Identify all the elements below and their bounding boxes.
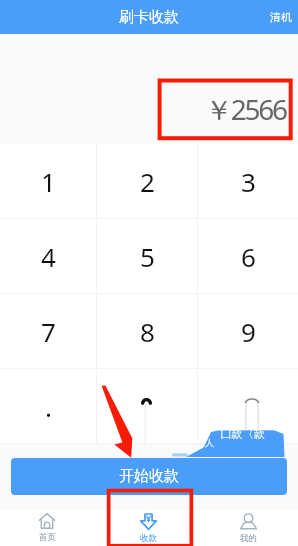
staticText: 7	[41, 314, 56, 349]
staticText: 开始收款	[119, 467, 179, 486]
button[interactable]: 9	[198, 294, 298, 368]
button[interactable]: .	[0, 369, 96, 443]
staticText: 3	[241, 164, 256, 199]
staticText: 我的	[240, 533, 257, 544]
button[interactable]: 我的	[199, 510, 298, 546]
staticText: ￥2566	[205, 90, 286, 128]
button[interactable]: 首页	[0, 510, 100, 546]
staticText: 1	[41, 164, 56, 199]
button[interactable]: 8	[97, 294, 197, 368]
staticText: 9	[241, 314, 256, 349]
staticText: 2	[140, 164, 155, 199]
button[interactable]: 7	[0, 294, 96, 368]
staticText: 人	[205, 437, 214, 448]
button[interactable]: 4	[0, 219, 96, 293]
staticText: 6	[241, 239, 256, 274]
staticText: .	[45, 389, 52, 424]
staticText: 收款	[140, 533, 157, 544]
staticText: 4	[41, 239, 56, 274]
button[interactable]: 开始收款	[11, 458, 287, 495]
staticText: 8	[140, 314, 155, 349]
staticText: 囗款〈款	[220, 427, 265, 441]
staticText: 首页	[39, 532, 56, 543]
button[interactable]: 2	[97, 144, 197, 218]
button[interactable]: 3	[198, 144, 298, 218]
button[interactable]: 清机	[264, 2, 298, 32]
button[interactable]: Delete	[198, 369, 298, 443]
staticText: 刷卡收款	[119, 8, 179, 27]
button[interactable]: 5	[97, 219, 197, 293]
button[interactable]: 1	[0, 144, 96, 218]
staticText: 清机	[270, 10, 292, 24]
button[interactable]	[97, 369, 197, 443]
staticText: 5	[140, 239, 155, 274]
other: Delete	[245, 397, 259, 431]
button[interactable]: 6	[198, 219, 298, 293]
button[interactable]: 收款	[100, 510, 199, 546]
